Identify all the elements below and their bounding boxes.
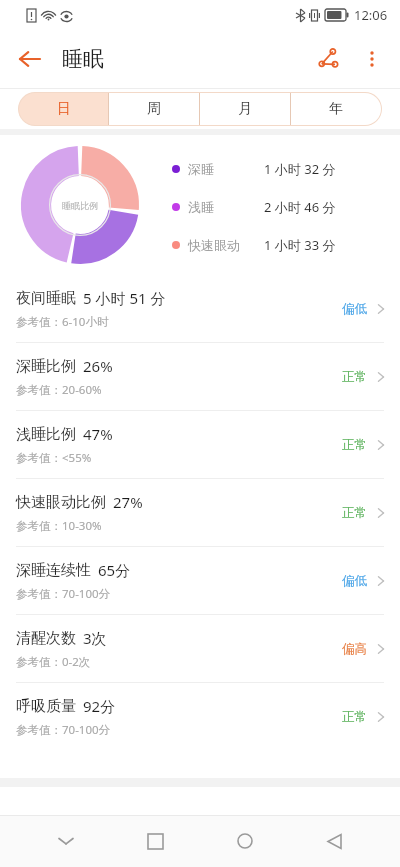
staticText: 2 小时 46 分 [264, 198, 336, 216]
staticText: 周 [147, 100, 161, 118]
button[interactable]: 日 [19, 93, 108, 125]
staticText: 深睡 [188, 161, 214, 177]
button[interactable]: 深睡比例 [0, 343, 400, 410]
staticText: 5 小时 51 分 [83, 288, 166, 308]
staticText: 快速眼动 [188, 237, 240, 253]
staticText: 正常 [342, 437, 367, 453]
button[interactable]: 快速眼动比例 [0, 479, 400, 546]
button[interactable]: 清醒次数 [0, 615, 400, 682]
staticText: 呼吸质量 [16, 697, 76, 716]
staticText: 深睡连续性 [16, 561, 91, 580]
button[interactable]: 月 [200, 93, 290, 125]
staticText: 正常 [342, 505, 367, 521]
staticText: 偏低 [342, 301, 367, 317]
button[interactable]: More options [350, 37, 394, 81]
button[interactable]: Share [306, 37, 350, 81]
staticText: 睡眠 [62, 46, 104, 72]
staticText: 27% [113, 492, 143, 512]
button[interactable]: Home [221, 817, 269, 865]
staticText: 参考值：70-100分 [16, 722, 111, 738]
staticText: 正常 [342, 369, 367, 385]
staticText: 参考值：6-10小时 [16, 314, 109, 330]
staticText: 偏高 [342, 641, 367, 657]
staticText: 浅睡 [188, 199, 214, 215]
staticText: 日 [57, 100, 71, 118]
staticText: 清醒次数 [16, 629, 76, 648]
staticText: 92分 [83, 696, 116, 716]
button[interactable]: 呼吸质量 [0, 683, 400, 750]
staticText: 1 小时 33 分 [264, 236, 336, 254]
staticText: 3次 [83, 628, 107, 648]
button[interactable]: 周 [109, 93, 199, 125]
staticText: 65分 [98, 560, 131, 580]
staticText: 快速眼动比例 [16, 493, 106, 512]
button[interactable]: 深睡连续性 [0, 547, 400, 614]
button[interactable]: 年 [291, 93, 381, 125]
staticText: 睡眠比例 [62, 200, 98, 211]
staticText: 26% [83, 356, 113, 376]
staticText: 参考值：20-60% [16, 382, 102, 398]
staticText: 参考值：10-30% [16, 518, 102, 534]
button[interactable]: 浅睡比例 [0, 411, 400, 478]
staticText: 参考值：<55% [16, 450, 92, 466]
staticText: 偏低 [342, 573, 367, 589]
staticText: 12:06 [354, 6, 388, 24]
staticText: 正常 [342, 709, 367, 725]
button[interactable]: 夜间睡眠 [0, 275, 400, 342]
button[interactable]: Hide keyboard [42, 817, 90, 865]
staticText: 浅睡比例 [16, 425, 76, 444]
staticText: 1 小时 32 分 [264, 160, 336, 178]
staticText: 月 [238, 100, 252, 118]
button[interactable]: Recent apps [131, 817, 179, 865]
staticText: 夜间睡眠 [16, 289, 76, 308]
staticText: 年 [329, 100, 343, 118]
button[interactable]: Back [8, 37, 52, 81]
staticText: 47% [83, 424, 113, 444]
staticText: 参考值：70-100分 [16, 586, 111, 602]
staticText: 深睡比例 [16, 357, 76, 376]
button[interactable]: Back [310, 817, 358, 865]
staticText: 参考值：0-2次 [16, 654, 91, 670]
